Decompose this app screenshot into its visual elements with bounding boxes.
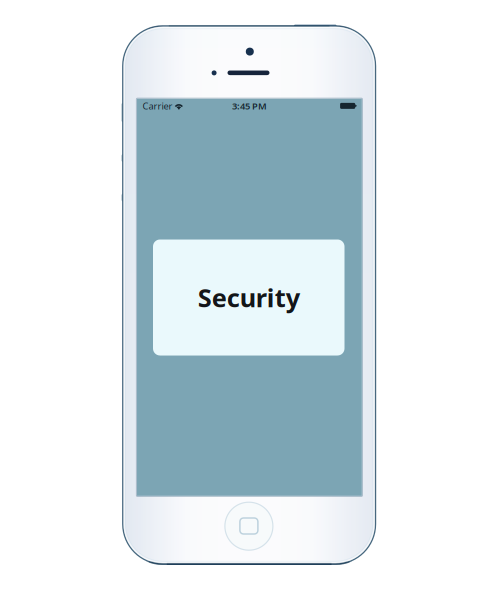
staticText: 3:45 PM bbox=[232, 100, 267, 112]
staticText: Security bbox=[198, 281, 300, 314]
staticText: Carrier bbox=[142, 100, 172, 112]
button[interactable]: Security bbox=[153, 239, 344, 355]
